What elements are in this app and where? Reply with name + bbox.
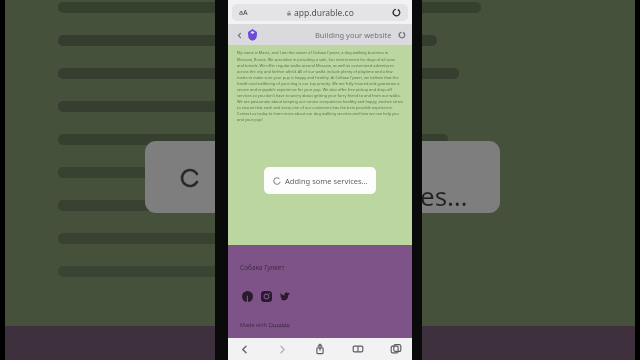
button[interactable]: Refresh preview [396,29,407,40]
button[interactable]: Durable [269,321,290,328]
staticText: Собака Гуляет [240,263,285,272]
button[interactable]: Facebook [240,289,254,303]
button[interactable]: Back [233,29,245,41]
staticText: Adding some services… [285,176,368,186]
staticText: My name is Maria, and I am the owner of … [237,50,403,122]
button[interactable]: Instagram [259,289,273,303]
button[interactable]: Tabs [388,341,404,357]
button[interactable]: Twitter [278,289,292,303]
button[interactable]: Bookmarks [350,341,366,357]
button[interactable]: Text size options [237,6,250,19]
staticText: Durable [269,321,290,328]
button[interactable]: Text size options [232,4,408,21]
staticText: aA [239,8,248,18]
staticText: Made with [240,321,269,328]
staticText: Building your website [315,30,392,40]
button[interactable]: Adding some services… [264,167,376,194]
staticText: es… [420,178,468,213]
button[interactable]: Back [236,341,252,357]
button[interactable]: Reload page [390,6,403,19]
button[interactable]: Share [312,341,328,357]
staticText: app.durable.co [294,7,354,19]
button[interactable]: Forward [274,341,290,357]
